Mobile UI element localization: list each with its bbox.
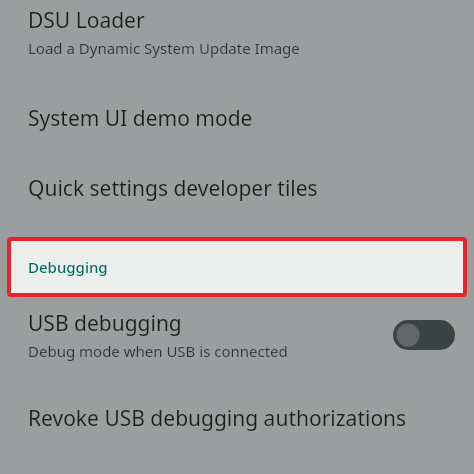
button[interactable]: System UI demo mode [0, 100, 474, 137]
staticText: DSU Loader [28, 6, 145, 35]
button[interactable]: USB debugging toggle, off [393, 320, 455, 350]
button[interactable]: USB debugging [0, 305, 474, 365]
staticText: Quick settings developer tiles [28, 174, 318, 203]
button[interactable]: Debugging [11, 241, 463, 293]
button[interactable]: Quick settings developer tiles [0, 170, 474, 207]
staticText: USB debugging [28, 309, 182, 338]
staticText: System UI demo mode [28, 104, 253, 133]
button[interactable]: Revoke USB debugging authorizations [0, 400, 474, 437]
staticText: Revoke USB debugging authorizations [28, 404, 407, 433]
button[interactable]: DSU Loader [0, 4, 474, 66]
staticText: Debugging [28, 257, 108, 277]
staticText: Debug mode when USB is connected [28, 341, 288, 361]
staticText: Load a Dynamic System Update Image [28, 38, 300, 58]
